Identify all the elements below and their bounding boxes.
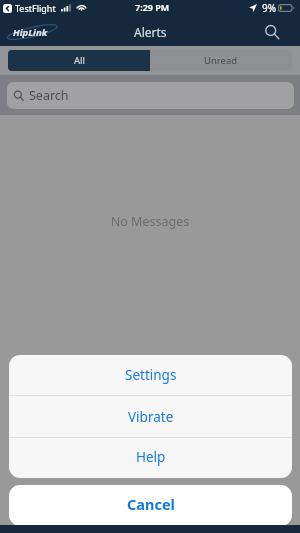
button[interactable]: Search bbox=[7, 82, 294, 109]
staticText: Unread bbox=[204, 54, 238, 67]
staticText: TestFlight bbox=[15, 2, 56, 14]
staticText: Cancel bbox=[127, 494, 175, 514]
staticText: HipLink bbox=[13, 26, 48, 39]
staticText: All bbox=[74, 54, 85, 67]
staticText: No Messages bbox=[0, 213, 300, 230]
button[interactable]: Search bbox=[260, 20, 284, 44]
button[interactable]: Unread bbox=[150, 50, 292, 71]
button[interactable]: All bbox=[8, 50, 150, 71]
staticText: Settings bbox=[125, 366, 177, 384]
staticText: Search bbox=[29, 87, 69, 104]
staticText: Vibrate bbox=[128, 408, 174, 426]
staticText: 9% bbox=[262, 1, 277, 15]
staticText: Alerts bbox=[134, 24, 167, 40]
button[interactable]: Vibrate bbox=[9, 396, 292, 437]
staticText: Help bbox=[136, 448, 166, 466]
button[interactable]: Help bbox=[9, 438, 292, 478]
button[interactable]: Settings bbox=[9, 355, 292, 395]
staticText: 7:29 PM bbox=[135, 1, 170, 13]
button[interactable]: Cancel bbox=[9, 485, 292, 526]
button[interactable]: Back to TestFlight bbox=[3, 2, 56, 14]
